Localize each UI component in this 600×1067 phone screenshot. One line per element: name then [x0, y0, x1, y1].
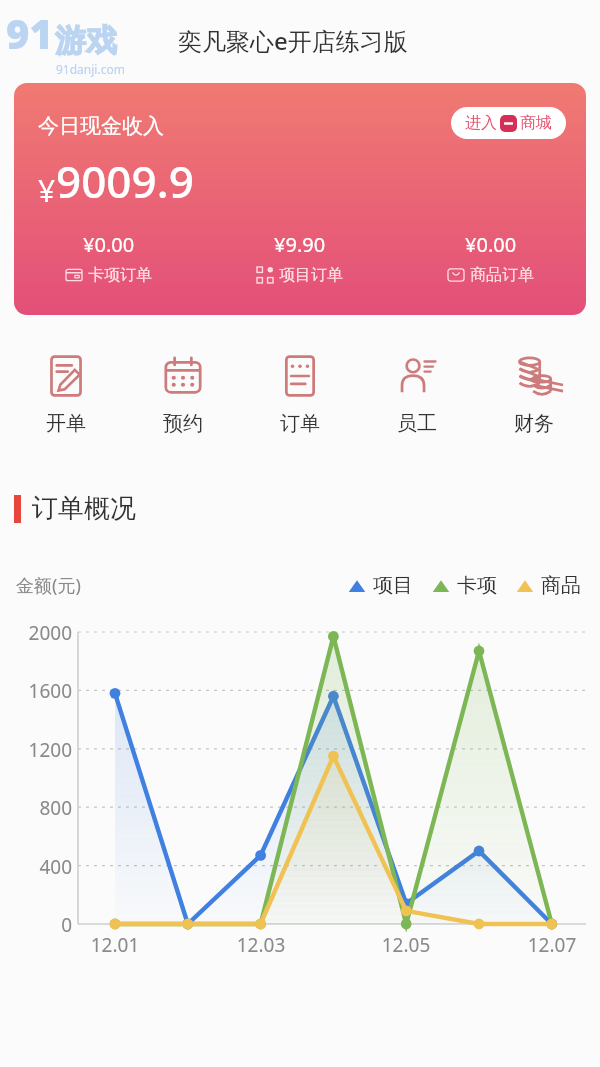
staticText: 91	[6, 6, 53, 60]
button[interactable]: 今日现金收入	[14, 83, 586, 315]
button[interactable]: 员工	[358, 350, 475, 440]
staticText: 91danji.com	[56, 61, 125, 77]
staticText: 游戏	[55, 21, 117, 60]
staticText: 9009.9	[56, 151, 194, 211]
staticText: 400	[4, 854, 72, 880]
staticText: 订单	[280, 411, 320, 436]
staticText: 员工	[397, 411, 437, 436]
staticText: 奕凡聚心e开店练习版	[178, 24, 408, 57]
staticText: 订单概况	[32, 492, 136, 525]
staticText: 预约	[163, 411, 203, 436]
staticText: 商城	[520, 113, 552, 133]
button[interactable]: 进入	[451, 107, 566, 139]
other: 预约	[161, 354, 205, 398]
button[interactable]: 订单	[241, 350, 358, 440]
staticText: 0	[4, 912, 72, 938]
button[interactable]: 项目	[347, 572, 414, 599]
button[interactable]: ¥0.00	[14, 229, 204, 287]
button[interactable]: 开单	[8, 350, 124, 440]
button[interactable]: ¥0.00	[395, 229, 586, 287]
staticText: 商品	[541, 573, 581, 598]
button[interactable]: ¥9.90	[204, 229, 395, 287]
staticText: 金额(元)	[16, 573, 81, 598]
button[interactable]: 卡项	[431, 572, 498, 599]
staticText: 12.07	[520, 932, 584, 958]
other: 订单	[278, 354, 322, 398]
other: 财务	[512, 354, 556, 398]
staticText: 12.03	[229, 932, 293, 958]
staticText: 12.01	[83, 932, 147, 958]
staticText: 1200	[4, 737, 72, 763]
staticText: 12.05	[374, 932, 438, 958]
staticText: ¥0.00	[465, 231, 517, 258]
staticText: 商品订单	[470, 265, 534, 285]
staticText: 财务	[514, 411, 554, 436]
staticText: 项目	[373, 573, 413, 598]
staticText: ¥0.00	[83, 231, 135, 258]
staticText: 1600	[4, 678, 72, 704]
staticText: 今日现金收入	[38, 113, 164, 139]
staticText: 2000	[4, 620, 72, 646]
staticText: ¥	[38, 170, 56, 211]
other: 开单	[44, 354, 88, 398]
button[interactable]: 预约	[124, 350, 241, 440]
staticText: 开单	[46, 411, 86, 436]
staticText: 项目订单	[279, 265, 343, 285]
button[interactable]: 商品	[515, 572, 582, 599]
button[interactable]: 财务	[475, 350, 592, 440]
staticText: 卡项订单	[88, 265, 152, 285]
staticText: 800	[4, 795, 72, 821]
staticText: 卡项	[457, 573, 497, 598]
staticText: 进入	[465, 113, 497, 133]
staticText: ¥9.90	[274, 231, 326, 258]
other: 员工	[395, 354, 439, 398]
